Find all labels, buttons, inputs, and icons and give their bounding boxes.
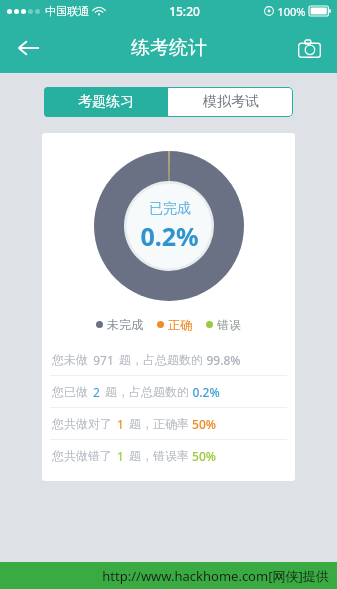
staticText: 题，错误率 bbox=[129, 448, 189, 463]
staticText: 0.2% bbox=[140, 219, 199, 253]
staticText: 模拟考试 bbox=[203, 93, 259, 111]
staticText: 题，占总题数的 bbox=[119, 352, 203, 367]
staticText: 2 bbox=[93, 384, 100, 400]
staticText: 未完成 bbox=[107, 317, 143, 332]
staticText: 1 bbox=[117, 416, 124, 432]
staticText: 您共做对了 bbox=[52, 416, 112, 431]
staticText: 0.2% bbox=[192, 384, 220, 400]
staticText: 971 bbox=[93, 352, 114, 368]
button[interactable]: Back bbox=[6, 26, 50, 70]
staticText: 15:20 bbox=[169, 3, 200, 19]
button[interactable]: 您已做 bbox=[42, 376, 295, 407]
button[interactable]: Camera bbox=[287, 26, 331, 70]
button[interactable]: 您共做错了 bbox=[42, 440, 295, 471]
staticText: 100% bbox=[277, 4, 306, 19]
staticText: 练考统计 bbox=[131, 36, 207, 60]
button[interactable]: 考题练习 bbox=[44, 87, 168, 117]
button[interactable]: 模拟考试 bbox=[168, 87, 293, 117]
staticText: 中国联通 bbox=[45, 4, 89, 18]
button[interactable]: 您共做对了 bbox=[42, 408, 295, 439]
staticText: 题，正确率 bbox=[129, 416, 189, 431]
staticText: 题，占总题数的 bbox=[105, 384, 189, 399]
staticText: 50% bbox=[192, 416, 216, 432]
button[interactable]: 您未做 bbox=[42, 344, 295, 375]
staticText: 50% bbox=[192, 448, 216, 464]
staticText: 错误 bbox=[217, 317, 241, 332]
staticText: 已完成 bbox=[149, 200, 191, 218]
staticText: 99.8% bbox=[206, 352, 241, 368]
staticText: 正确 bbox=[168, 317, 192, 332]
staticText: http://www.hackhome.com[网侠]提供 bbox=[102, 567, 329, 585]
staticText: 1 bbox=[117, 448, 124, 464]
staticText: 您已做 bbox=[52, 384, 88, 399]
staticText: 考题练习 bbox=[78, 93, 134, 111]
staticText: 您共做错了 bbox=[52, 448, 112, 463]
staticText: 您未做 bbox=[52, 352, 88, 367]
